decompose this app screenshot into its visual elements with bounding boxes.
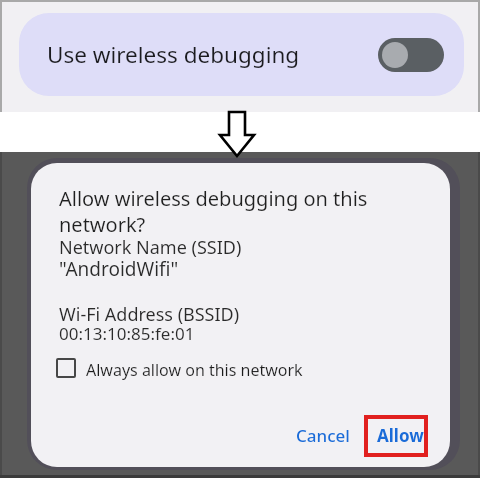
staticText: 00:13:10:85:fe:01	[59, 322, 195, 345]
button[interactable]: Cancel	[288, 421, 354, 449]
button[interactable]: Always allow on this network	[56, 356, 336, 384]
staticText: "AndroidWifi"	[59, 256, 179, 282]
staticText: Wi-Fi Address (BSSID)	[59, 302, 240, 327]
button[interactable]: Use wireless debugging	[19, 13, 464, 96]
staticText: Allow	[377, 424, 424, 447]
staticText: Allow wireless debugging on this network…	[59, 185, 368, 237]
staticText: Cancel	[296, 424, 350, 447]
staticText: Network Name (SSID)	[59, 235, 242, 260]
staticText: Always allow on this network	[86, 359, 303, 381]
button[interactable]: Allow	[364, 415, 428, 457]
button[interactable]	[378, 38, 444, 72]
staticText: Use wireless debugging	[47, 39, 300, 70]
